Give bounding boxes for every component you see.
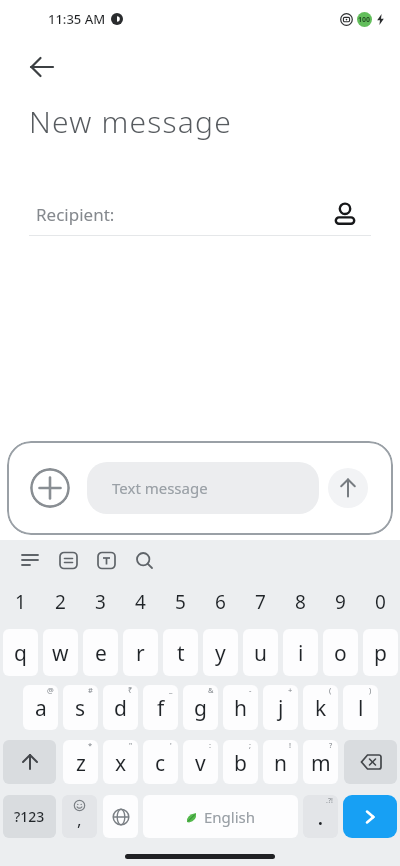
staticText: m <box>311 749 331 778</box>
button[interactable] <box>125 541 163 579</box>
button[interactable]: j <box>263 685 298 730</box>
staticText: t <box>177 639 185 668</box>
button[interactable]: b <box>223 740 258 784</box>
button[interactable]: k <box>303 685 338 730</box>
staticText: ; <box>249 740 252 750</box>
button[interactable]: 9 <box>320 582 360 622</box>
button[interactable]: , <box>62 795 97 838</box>
button[interactable]: s <box>63 685 98 730</box>
button[interactable] <box>103 795 138 838</box>
staticText: o <box>334 639 347 668</box>
button[interactable]: t <box>163 629 198 676</box>
staticText: p <box>374 639 387 668</box>
staticText: b <box>234 749 247 778</box>
staticText: 9 <box>335 589 346 615</box>
button[interactable] <box>11 541 49 579</box>
staticText: q <box>14 639 27 668</box>
button[interactable]: a <box>23 685 58 730</box>
button[interactable]: d <box>103 685 138 730</box>
staticText: g <box>194 694 207 723</box>
staticText: z <box>76 749 86 778</box>
button[interactable]: r <box>123 629 158 676</box>
staticText: _ <box>169 685 173 695</box>
button[interactable]: 0 <box>360 582 400 622</box>
button[interactable]: n <box>263 740 298 784</box>
staticText: - <box>249 685 252 695</box>
staticText: 6 <box>215 589 226 615</box>
staticText: 1 <box>15 589 26 615</box>
staticText: y <box>215 639 226 668</box>
staticText: x <box>115 749 127 778</box>
button[interactable]: y <box>203 629 238 676</box>
button[interactable]: c <box>143 740 178 784</box>
staticText: " <box>129 740 133 750</box>
button[interactable] <box>3 740 56 784</box>
button[interactable] <box>328 468 368 508</box>
button[interactable]: ?123 <box>3 795 56 838</box>
staticText: New message <box>29 101 232 142</box>
button[interactable]: 1 <box>0 582 40 622</box>
staticText: ( <box>329 685 332 695</box>
staticText: : <box>209 740 212 750</box>
button[interactable]: h <box>223 685 258 730</box>
button[interactable] <box>87 541 125 579</box>
staticText: w <box>52 639 69 668</box>
button[interactable]: v <box>183 740 218 784</box>
staticText: ) <box>369 685 372 695</box>
button[interactable]: Text message <box>87 462 319 514</box>
staticText: & <box>208 685 214 695</box>
staticText: ?123 <box>14 807 45 826</box>
staticText: j <box>278 694 284 723</box>
button[interactable]: g <box>183 685 218 730</box>
staticText: s <box>75 694 86 723</box>
button[interactable]: l <box>343 685 378 730</box>
button[interactable]: 3 <box>80 582 120 622</box>
staticText: 5 <box>175 589 186 615</box>
button[interactable]: 4 <box>120 582 160 622</box>
staticText: d <box>114 694 127 723</box>
staticText: 3 <box>95 589 106 615</box>
button[interactable]: q <box>3 629 38 676</box>
staticText: 11:35 AM <box>48 10 106 28</box>
button[interactable] <box>49 541 87 579</box>
staticText: 0 <box>375 589 386 615</box>
button[interactable]: u <box>243 629 278 676</box>
staticText: h <box>234 694 247 723</box>
staticText: c <box>155 749 166 778</box>
button[interactable]: x <box>103 740 138 784</box>
staticText: k <box>315 694 327 723</box>
button[interactable] <box>30 468 70 508</box>
button[interactable]: 2 <box>40 582 80 622</box>
staticText: , <box>77 808 82 831</box>
button[interactable]: m <box>303 740 338 784</box>
staticText: 4 <box>135 589 146 615</box>
button[interactable]: 5 <box>160 582 200 622</box>
button[interactable] <box>343 795 397 838</box>
button[interactable]: w <box>43 629 78 676</box>
staticText: ' <box>170 740 172 750</box>
button[interactable]: i <box>283 629 318 676</box>
button[interactable]: f <box>143 685 178 730</box>
staticText: ? <box>329 740 333 750</box>
button[interactable]: 7 <box>240 582 280 622</box>
button[interactable] <box>344 740 397 784</box>
button[interactable]: p <box>363 629 398 676</box>
button[interactable]: 6 <box>200 582 240 622</box>
staticText: Recipient: <box>36 203 115 226</box>
staticText: n <box>274 749 287 778</box>
staticText: a <box>35 694 47 723</box>
button[interactable]: 8 <box>280 582 320 622</box>
staticText: @ <box>47 685 54 695</box>
button[interactable]: English <box>143 795 298 838</box>
button[interactable]: e <box>83 629 118 676</box>
button[interactable]: z <box>63 740 98 784</box>
staticText: 100 <box>358 15 371 25</box>
button[interactable]: .?! <box>303 795 338 838</box>
staticText: Text message <box>112 478 208 498</box>
staticText: . <box>318 807 323 830</box>
staticText: + <box>288 685 293 695</box>
button[interactable] <box>18 43 66 91</box>
staticText: # <box>88 685 93 695</box>
button[interactable]: Recipient: <box>36 196 356 232</box>
button[interactable]: o <box>323 629 358 676</box>
